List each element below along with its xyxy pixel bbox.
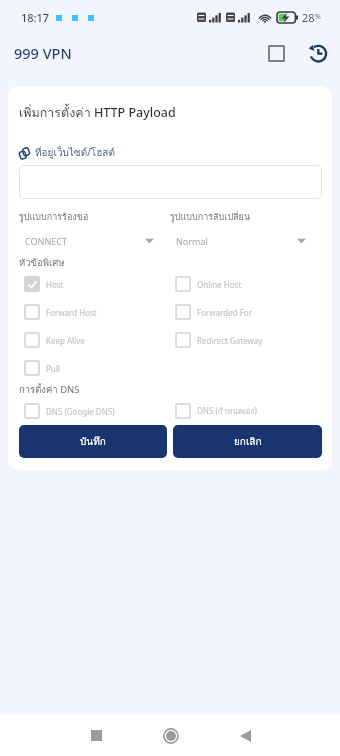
staticText: 28 <box>302 10 315 25</box>
button[interactable] <box>19 165 322 199</box>
button[interactable]: Host <box>19 270 170 298</box>
staticText: ที่อยู่เว็บไซต์/โฮสต์ <box>35 145 115 161</box>
staticText: 999 VPN <box>14 43 72 63</box>
staticText: รูปแบบการร้องขอ <box>19 210 89 224</box>
staticText: Normal <box>176 235 208 247</box>
staticText: 18:17 <box>21 10 50 25</box>
staticText: รูปแบบการสับเปลี่ยน <box>170 210 251 224</box>
staticText: DNS (Google DNS) <box>46 406 115 417</box>
staticText: % <box>315 12 321 22</box>
staticText: ยกเลิก <box>234 434 262 450</box>
staticText: เพิ่มการตั้งค่า HTTP Payload <box>19 103 176 123</box>
button[interactable]: ยกเลิก <box>173 425 322 458</box>
button[interactable]: Recents <box>75 715 117 756</box>
staticText: Forwarded For <box>197 307 252 318</box>
button[interactable]: History <box>300 36 334 70</box>
button[interactable]: DNS (Google DNS) <box>19 397 170 425</box>
staticText: Pull <box>46 363 60 374</box>
staticText: DNS (กำหนดเอง) <box>197 405 257 418</box>
button[interactable]: บันทึก <box>19 425 167 458</box>
button[interactable]: Stop <box>259 36 293 70</box>
button[interactable]: Home <box>150 715 192 756</box>
button[interactable]: Online Host <box>170 270 322 298</box>
button[interactable]: Redirect Gateway <box>170 326 322 354</box>
button[interactable]: Forward Host <box>19 298 170 326</box>
staticText: Redirect Gateway <box>197 335 263 346</box>
button[interactable]: CONNECT <box>19 235 154 247</box>
staticText: Keep Alive <box>46 335 85 346</box>
button[interactable]: Normal <box>170 235 306 247</box>
staticText: Online Host <box>197 279 242 290</box>
staticText: การตั้งค่า DNS <box>19 382 80 397</box>
staticText: บันทึก <box>80 434 106 450</box>
staticText: หัวข้อพิเศษ <box>19 255 65 270</box>
staticText: Forward Host <box>46 307 97 318</box>
button[interactable]: Back <box>224 715 266 756</box>
button[interactable]: Keep Alive <box>19 326 170 354</box>
button[interactable]: DNS (กำหนดเอง) <box>170 397 322 425</box>
button[interactable]: Pull <box>19 354 170 382</box>
staticText: Host <box>46 279 64 290</box>
button[interactable]: Forwarded For <box>170 298 322 326</box>
staticText: CONNECT <box>25 235 67 247</box>
